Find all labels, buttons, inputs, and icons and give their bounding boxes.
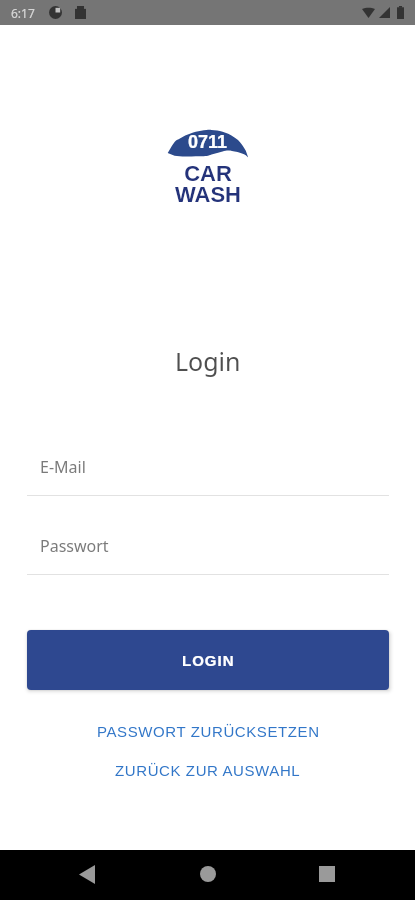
staticText: 6:17 xyxy=(11,5,35,21)
staticText: 0711 xyxy=(188,132,228,152)
staticText: CAR WASH xyxy=(175,161,241,206)
staticText: Login xyxy=(175,344,241,378)
button[interactable]: PASSWORT ZURÜCKSETZEN xyxy=(27,718,389,744)
button[interactable]: ZURÜCK ZUR AUSWAHL xyxy=(27,757,389,783)
staticText: Passwort xyxy=(40,535,109,557)
button[interactable]: Home xyxy=(184,850,232,898)
staticText: ZURÜCK ZUR AUSWAHL xyxy=(115,762,301,779)
button[interactable]: Recent apps xyxy=(303,850,351,898)
button[interactable]: LOGIN xyxy=(27,630,389,690)
button[interactable]: Back xyxy=(63,850,111,898)
staticText: PASSWORT ZURÜCKSETZEN xyxy=(97,723,320,740)
staticText: E-Mail xyxy=(40,456,86,478)
staticText: LOGIN xyxy=(182,652,235,669)
